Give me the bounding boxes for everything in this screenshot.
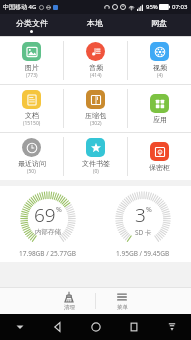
button[interactable]: 69 [0,190,95,258]
button[interactable]: 压缩包 [64,85,127,132]
button[interactable]: 3 [95,190,191,258]
staticText: 分类文件 [16,18,48,28]
staticText: 69 [34,202,56,228]
staticText: 中国移动 4G [3,3,37,11]
staticText: 清理 [64,304,75,311]
staticText: 3 [135,202,146,228]
button[interactable]: 应用 [128,85,191,132]
staticText: 最近访问 [18,159,46,168]
button[interactable]: 视频 [128,37,191,84]
staticText: 本地 [87,18,103,28]
staticText: 95% [146,3,158,11]
button[interactable]: 图片 [0,37,63,84]
staticText: (302) [90,120,102,127]
staticText: 菜单 [117,304,128,311]
staticText: 视频 [153,63,167,72]
staticText: (0) [93,168,99,175]
button[interactable]: 最近访问 [0,133,63,180]
button[interactable]: Home [77,314,115,340]
staticText: 文件书签 [82,159,110,168]
staticText: 17.98GB / 25.77GB [19,249,76,258]
button[interactable]: Hide keyboard [0,314,39,340]
button[interactable]: Download [153,314,191,340]
button[interactable]: 网盘 [127,14,191,36]
staticText: (414) [90,72,102,79]
staticText: 1.95GB / 59.45GB [116,249,170,258]
staticText: 音频 [89,63,103,72]
staticText: 网盘 [151,18,167,28]
button[interactable]: 音频 [64,37,127,84]
button[interactable]: 文档 [0,85,63,132]
staticText: % [146,205,152,215]
staticText: 文档 [25,111,39,120]
staticText: 07:03 [172,3,188,11]
staticText: 图片 [25,63,39,72]
staticText: SD 卡 [135,228,152,237]
staticText: 应用 [153,115,167,124]
button[interactable]: 清理 [43,288,95,314]
button[interactable]: 保密柜 [128,133,191,180]
staticText: (15150) [23,120,41,127]
button[interactable]: 分类文件 [0,14,63,36]
staticText: (50) [27,168,36,175]
button[interactable]: 本地 [63,14,127,36]
button[interactable]: Recents [115,314,153,340]
staticText: % [56,205,62,215]
staticText: 内部存储 [35,228,61,236]
staticText: (4) [157,72,163,79]
staticText: (773) [26,72,38,79]
button[interactable]: Back [39,314,77,340]
button[interactable]: 菜单 [96,288,148,314]
staticText: 保密柜 [149,163,170,172]
staticText: 压缩包 [85,111,106,120]
button[interactable]: 文件书签 [64,133,127,180]
